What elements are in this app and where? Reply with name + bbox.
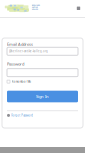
staticText: Remember Me [12,80,32,83]
staticText: KOLLEG [32,8,38,10]
staticText: Password [7,61,24,67]
staticText: Forgot Password [11,114,33,117]
staticText: BERLINER [32,4,40,6]
button[interactable]: Forgot Password [7,113,78,118]
button[interactable]: Remember Me [7,80,78,84]
button[interactable]: Menu [74,4,83,13]
staticText: ANTIKE [32,6,38,8]
staticText: Email Address [7,42,33,47]
button[interactable]: Sign In [7,91,78,102]
staticText: Sign In [36,94,49,99]
staticText: @berliner-antike-kolleg.org [9,49,48,53]
